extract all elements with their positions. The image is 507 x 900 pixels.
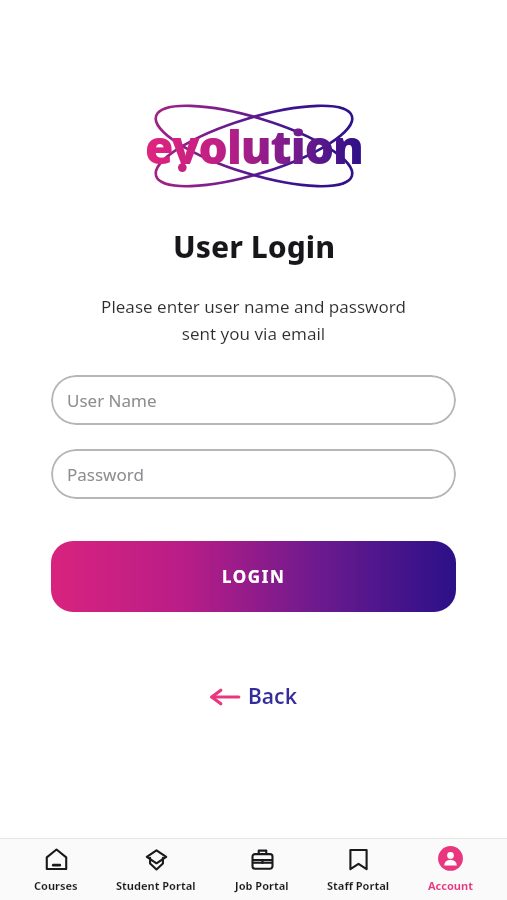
button[interactable]: Password [51,449,456,499]
button[interactable]: Account [424,842,477,897]
staticText: LOGIN [222,565,286,588]
button[interactable]: Student Portal [112,842,200,897]
button[interactable]: Staff Portal [323,842,394,897]
staticText: Back [248,682,298,711]
button[interactable]: Job Portal [231,842,293,897]
button[interactable]: Back [196,674,312,719]
other: Back [210,687,240,707]
other: Staff Portal [345,846,372,873]
other: Courses [43,846,70,873]
staticText: User Name [67,389,157,412]
other: Student Portal [143,846,170,873]
staticText: Student Portal [116,878,196,893]
staticText: Staff Portal [327,878,390,893]
button[interactable]: User Name [51,375,456,425]
other: Job Portal [249,846,276,873]
staticText: Courses [34,878,78,893]
staticText: User Login [173,226,335,267]
button[interactable]: LOGIN [51,541,456,612]
staticText: Job Portal [235,878,289,893]
other: Account [437,846,464,873]
button[interactable]: Courses [30,842,82,897]
staticText: Please enter user name and password sent… [40,295,467,345]
staticText: evolution [145,115,363,178]
staticText: Password [67,463,144,486]
staticText: Account [428,878,473,893]
